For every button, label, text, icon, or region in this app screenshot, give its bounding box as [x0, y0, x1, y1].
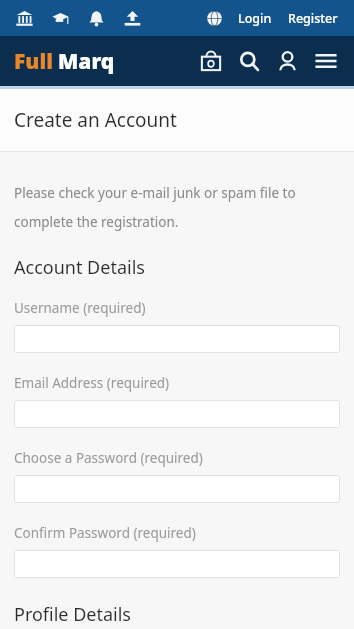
- staticText: Create an Account: [14, 107, 177, 133]
- button[interactable]: Menu: [308, 43, 344, 79]
- staticText: Register: [288, 10, 338, 27]
- staticText: complete the registration.: [14, 213, 340, 231]
- staticText: Username (required): [14, 299, 146, 317]
- staticText: Choose a Password (required): [14, 449, 203, 467]
- button[interactable]: Courses: [48, 6, 72, 30]
- staticText: Marq: [58, 47, 115, 76]
- staticText: Profile Details: [14, 602, 131, 627]
- button[interactable]: Email Address (required): [14, 400, 340, 428]
- button[interactable]: Confirm Password (required): [14, 550, 340, 578]
- staticText: Confirm Password (required): [14, 524, 196, 542]
- button[interactable]: Login: [232, 6, 278, 31]
- button[interactable]: Upload: [120, 6, 144, 30]
- button[interactable]: Institutions: [12, 6, 36, 30]
- button[interactable]: Choose a Password (required): [14, 475, 340, 503]
- staticText: Account Details: [14, 255, 145, 280]
- staticText: Login: [238, 10, 272, 27]
- button[interactable]: Cart, 0 items: [194, 44, 228, 78]
- button[interactable]: Username (required): [14, 325, 340, 353]
- staticText: Please check your e-mail junk or spam fi…: [14, 184, 340, 202]
- button[interactable]: Full: [14, 43, 115, 80]
- button[interactable]: Language: [202, 6, 226, 30]
- button[interactable]: Account: [270, 44, 304, 78]
- staticText: Email Address (required): [14, 374, 170, 392]
- staticText: Full: [14, 47, 53, 76]
- button[interactable]: Search: [232, 44, 266, 78]
- button[interactable]: Notifications: [84, 6, 108, 30]
- button[interactable]: Register: [282, 6, 344, 31]
